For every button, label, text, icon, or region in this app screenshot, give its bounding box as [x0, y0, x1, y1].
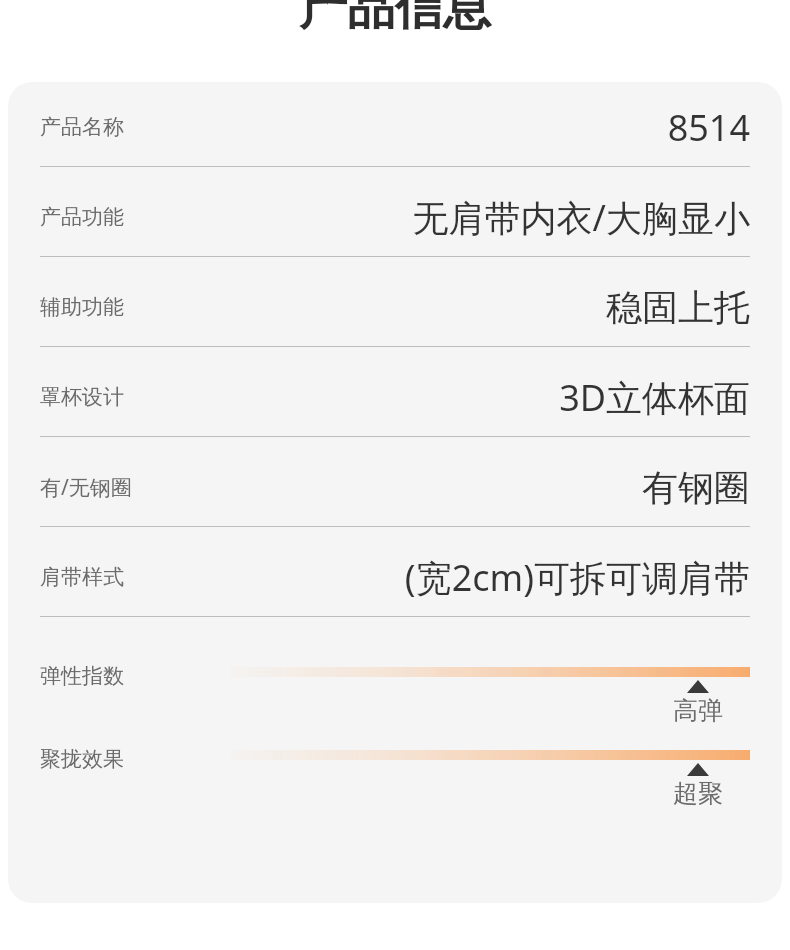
button[interactable]: 聚拢效果: [8, 725, 782, 808]
staticText: 罩杯设计: [40, 384, 124, 410]
staticText: 产品功能: [40, 204, 124, 230]
staticText: 肩带样式: [40, 564, 124, 590]
staticText: 高弹: [666, 695, 730, 726]
staticText: 产品名称: [40, 114, 124, 140]
button[interactable]: 有/无钢圈: [8, 442, 782, 532]
button[interactable]: 罩杯设计: [8, 352, 782, 442]
button[interactable]: 产品名称: [8, 82, 782, 172]
button[interactable]: 弹性指数: [8, 642, 782, 725]
staticText: 弹性指数: [40, 663, 124, 689]
staticText: 产品信息: [0, 0, 790, 32]
staticText: 稳固上托: [606, 285, 750, 330]
staticText: (宽2cm)可拆可调肩带: [404, 553, 750, 602]
staticText: 3D立体杯面: [559, 373, 750, 422]
staticText: 无肩带内衣/大胸显小: [412, 193, 750, 242]
staticText: 8514: [667, 103, 750, 152]
staticText: 有/无钢圈: [40, 473, 132, 502]
staticText: 聚拢效果: [40, 746, 124, 772]
staticText: 辅助功能: [40, 294, 124, 320]
staticText: 有钢圈: [642, 465, 750, 510]
button[interactable]: 产品功能: [8, 172, 782, 262]
button[interactable]: 辅助功能: [8, 262, 782, 352]
staticText: 超聚: [666, 778, 730, 809]
button[interactable]: 肩带样式: [8, 532, 782, 622]
